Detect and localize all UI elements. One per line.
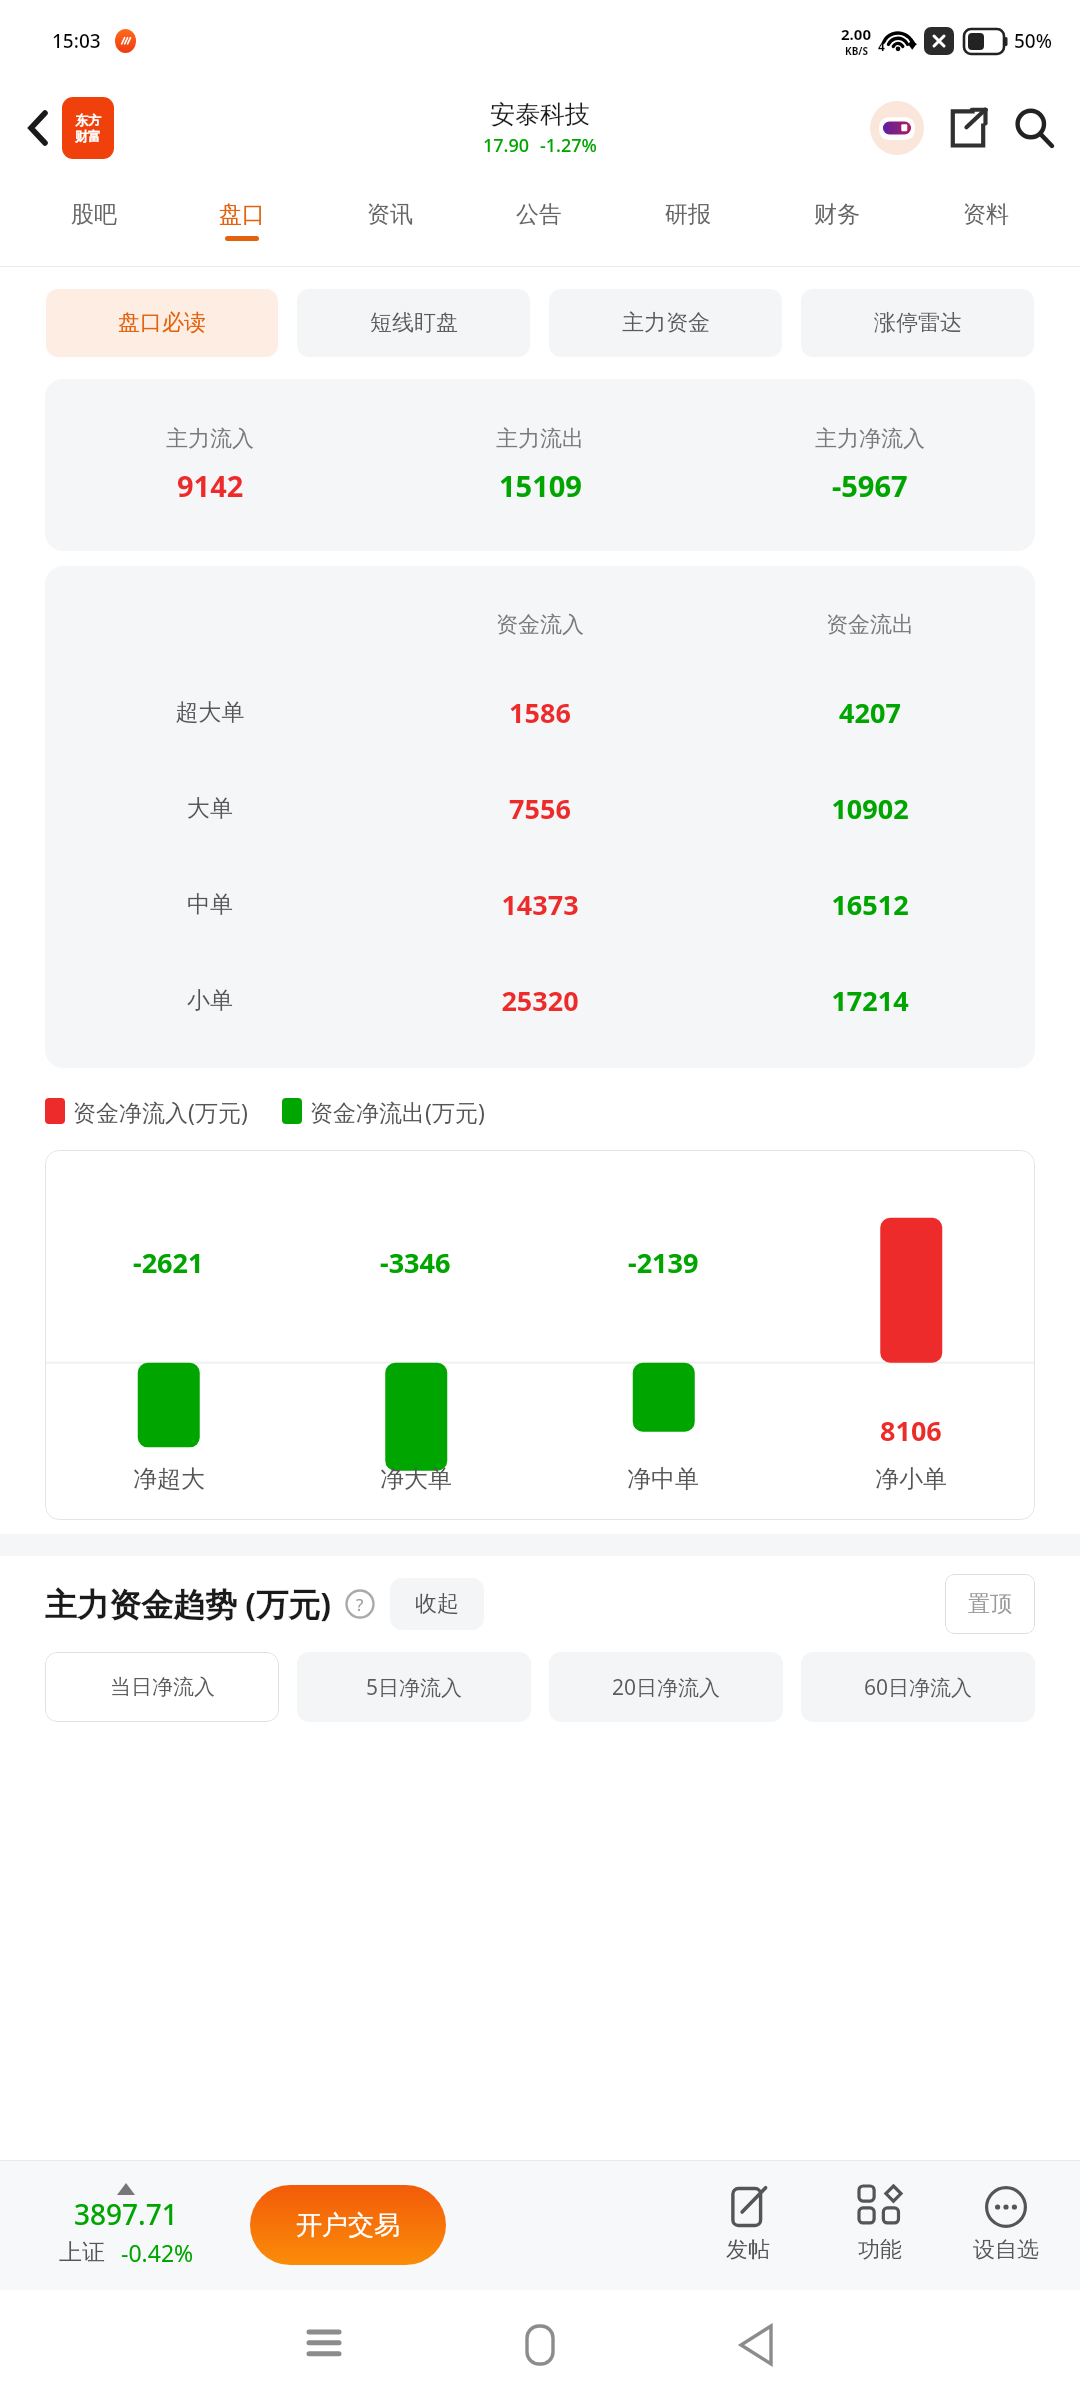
staticText: KB/S bbox=[845, 44, 868, 58]
staticText: 收起 bbox=[415, 1590, 459, 1618]
staticText: ? bbox=[356, 1593, 364, 1616]
staticText: 设自选 bbox=[973, 2236, 1039, 2264]
button[interactable]: Back bbox=[648, 2290, 864, 2400]
button[interactable]: 资金流入 bbox=[45, 586, 1035, 1048]
staticText: 5日净流入 bbox=[366, 1673, 463, 1702]
staticText: 财富 bbox=[75, 128, 101, 144]
button[interactable]: 资讯 bbox=[316, 174, 464, 266]
staticText: 4 bbox=[878, 38, 885, 54]
button[interactable]: 20日净流入 bbox=[549, 1652, 783, 1722]
staticText: 9142 bbox=[177, 466, 244, 505]
staticText: 主力资金 bbox=[622, 309, 710, 337]
staticText: 资金净流出(万元) bbox=[310, 1096, 485, 1127]
button[interactable]: 涨停雷达 bbox=[801, 289, 1034, 357]
button[interactable]: 盘口 bbox=[168, 174, 316, 266]
button[interactable]: 资料 bbox=[911, 174, 1060, 266]
staticText: 50% bbox=[1014, 28, 1052, 54]
staticText: 17214 bbox=[705, 982, 1035, 1019]
button[interactable]: 主力流入 bbox=[45, 379, 1035, 551]
staticText: 东方 bbox=[75, 112, 101, 128]
staticText: 公告 bbox=[516, 200, 562, 229]
staticText: 中单 bbox=[45, 890, 375, 919]
staticText: 16512 bbox=[705, 886, 1035, 923]
button[interactable]: Recents bbox=[216, 2290, 432, 2400]
button[interactable]: 5日净流入 bbox=[297, 1652, 531, 1722]
staticText: 15:03 bbox=[52, 28, 101, 54]
button[interactable]: 东方 bbox=[62, 97, 114, 159]
staticText: 资讯 bbox=[367, 200, 413, 229]
staticText: 置顶 bbox=[968, 1590, 1012, 1618]
button[interactable]: 收起 bbox=[390, 1578, 484, 1630]
button[interactable]: 财务 bbox=[762, 174, 911, 266]
button[interactable]: Search bbox=[1006, 100, 1062, 156]
button[interactable]: Back bbox=[12, 102, 64, 154]
staticText: 4207 bbox=[705, 694, 1035, 731]
button[interactable]: Post bbox=[700, 2186, 796, 2264]
button[interactable]: 60日净流入 bbox=[801, 1652, 1035, 1722]
staticText: 净超大 bbox=[133, 1464, 205, 1494]
button[interactable]: Functions bbox=[832, 2186, 928, 2264]
staticText: 资金流出 bbox=[705, 611, 1035, 639]
staticText: 财务 bbox=[814, 200, 860, 229]
button[interactable]: 超大单 bbox=[45, 664, 1035, 760]
staticText: 10902 bbox=[705, 790, 1035, 827]
staticText: 涨停雷达 bbox=[874, 309, 962, 337]
button[interactable]: 研报 bbox=[613, 174, 762, 266]
button[interactable]: 股吧 bbox=[20, 174, 168, 266]
staticText: 当日净流入 bbox=[110, 1674, 215, 1700]
button[interactable]: AI assistant bbox=[868, 99, 926, 157]
button[interactable]: -2621 bbox=[45, 1150, 1035, 1520]
staticText: 盘口必读 bbox=[118, 309, 206, 337]
staticText: 3897.71 bbox=[74, 2195, 178, 2233]
staticText: 功能 bbox=[858, 2236, 902, 2264]
staticText: 1586 bbox=[375, 694, 705, 731]
staticText: 研报 bbox=[665, 200, 711, 229]
staticText: 超大单 bbox=[45, 698, 375, 727]
staticText: 资金流入 bbox=[375, 611, 705, 639]
staticText: -1.27% bbox=[540, 133, 597, 158]
staticText: -0.42% bbox=[121, 2237, 194, 2268]
staticText: 净小单 bbox=[875, 1464, 947, 1494]
staticText: 主力净流入 bbox=[815, 425, 925, 453]
staticText: 股吧 bbox=[71, 200, 117, 229]
staticText: 发帖 bbox=[726, 2236, 770, 2264]
staticText: 上证 bbox=[59, 2238, 105, 2267]
button[interactable]: 盘口必读 bbox=[46, 289, 278, 357]
button[interactable]: 当日净流入 bbox=[45, 1652, 279, 1722]
button[interactable]: 短线盯盘 bbox=[297, 289, 530, 357]
staticText: 资金净流入(万元) bbox=[73, 1096, 248, 1127]
button[interactable]: 小单 bbox=[45, 952, 1035, 1048]
button[interactable]: Share bbox=[940, 100, 996, 156]
staticText: 主力流出 bbox=[496, 425, 584, 453]
button[interactable]: 置顶 bbox=[945, 1574, 1035, 1634]
staticText: 资料 bbox=[963, 200, 1009, 229]
button[interactable]: 开户交易 bbox=[250, 2185, 446, 2265]
staticText: -2621 bbox=[133, 1244, 204, 1281]
staticText: 短线盯盘 bbox=[370, 309, 458, 337]
button[interactable]: 3897.71 bbox=[26, 2183, 226, 2268]
staticText: 安泰科技 bbox=[490, 99, 590, 130]
staticText: 15109 bbox=[499, 466, 582, 505]
staticText: 盘口 bbox=[219, 200, 265, 229]
button[interactable]: Home bbox=[432, 2290, 648, 2400]
button[interactable]: Add to watchlist bbox=[958, 2186, 1054, 2264]
staticText: 净中单 bbox=[627, 1464, 699, 1494]
staticText: 主力资金趋势 (万元) bbox=[45, 1582, 332, 1626]
button[interactable]: 大单 bbox=[45, 760, 1035, 856]
staticText: 主力流入 bbox=[166, 425, 254, 453]
staticText: 20日净流入 bbox=[612, 1673, 721, 1702]
staticText: -2139 bbox=[628, 1244, 699, 1281]
button[interactable]: Help bbox=[344, 1588, 376, 1620]
button[interactable]: 公告 bbox=[464, 174, 613, 266]
staticText: 小单 bbox=[45, 986, 375, 1015]
staticText: 净大单 bbox=[380, 1464, 452, 1494]
staticText: 8106 bbox=[880, 1412, 942, 1449]
staticText: 7556 bbox=[375, 790, 705, 827]
staticText: -5967 bbox=[832, 466, 908, 505]
button[interactable]: 主力资金 bbox=[549, 289, 782, 357]
staticText: 60日净流入 bbox=[864, 1673, 973, 1702]
button[interactable]: 中单 bbox=[45, 856, 1035, 952]
staticText: 25320 bbox=[375, 982, 705, 1019]
staticText: -3346 bbox=[380, 1244, 451, 1281]
staticText: 14373 bbox=[375, 886, 705, 923]
